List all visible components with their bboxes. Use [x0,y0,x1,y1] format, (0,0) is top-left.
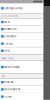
button[interactable]: Bluetooth [0,26,43,33]
staticText: Apps [1,75,5,78]
button[interactable]: Settings Home [0,3,43,13]
staticText: Cellular [4,42,13,45]
staticText: Sound [4,95,12,98]
button[interactable]: Display [0,79,43,86]
staticText: VPN [4,49,10,52]
button[interactable]: Notifications [0,86,43,93]
button[interactable]: VPN [0,47,43,54]
button[interactable]: SIM cards [0,33,43,40]
button[interactable]: Sound [0,93,43,100]
staticText: Mobile Data [4,66,19,69]
staticText: Wi-Fi & Networks [1,15,18,17]
button[interactable]: Mobile Data [0,61,43,74]
button[interactable]: Cellular [0,40,43,47]
staticText: Wi-Fi [4,20,10,24]
staticText: Bluetooth [4,28,16,31]
staticText: SIM cards [4,35,16,38]
staticText: Notifications [4,88,20,91]
button[interactable]: Wi-Fi [0,18,43,26]
staticText: Cellular Setting [1,57,13,60]
staticText: Settings Home [4,7,22,10]
staticText: Display [4,81,13,84]
